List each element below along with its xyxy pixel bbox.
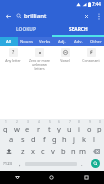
button[interactable]: 8 — [74, 120, 84, 133]
button[interactable]: a — [6, 133, 17, 145]
button[interactable]: 0 — [94, 120, 104, 133]
staticText: LOOKUP — [16, 26, 36, 33]
button[interactable]: Home — [34, 171, 69, 184]
staticText: 5 — [49, 120, 51, 124]
button[interactable]: ?123 — [0, 157, 15, 170]
staticText: 4 — [38, 120, 40, 124]
staticText: o — [87, 124, 92, 133]
staticText: c — [41, 146, 45, 156]
staticText: j — [73, 134, 75, 144]
button[interactable]: Adj. — [53, 37, 70, 46]
staticText: e — [25, 124, 30, 133]
staticText: t — [48, 124, 51, 133]
staticText: Any letter — [5, 58, 21, 63]
staticText: w — [14, 124, 20, 133]
button[interactable]: Verbs — [36, 37, 53, 46]
staticText: 2 — [16, 120, 18, 124]
staticText: Verbs — [39, 39, 51, 45]
button[interactable]: Back — [0, 171, 34, 184]
button[interactable]: Backspace — [88, 145, 104, 157]
staticText: d — [31, 134, 36, 144]
staticText: l — [93, 134, 95, 144]
button[interactable]: j — [69, 133, 79, 145]
staticText: Vowel — [60, 58, 70, 63]
button[interactable]: brilliant — [24, 12, 80, 20]
button[interactable]: Adv. — [70, 37, 87, 46]
button[interactable]: Nouns — [18, 37, 36, 46]
staticText: , — [19, 160, 21, 168]
button[interactable]: ? — [0, 48, 26, 63]
staticText: . — [81, 160, 83, 168]
staticText: f — [43, 134, 46, 144]
button[interactable]: Other — [87, 37, 104, 46]
staticText: x — [31, 146, 35, 156]
button[interactable]: x — [28, 145, 38, 157]
button[interactable]: c — [38, 145, 48, 157]
button[interactable]: Back — [0, 8, 16, 24]
button[interactable]: More options — [93, 11, 104, 22]
staticText: 9 — [89, 120, 91, 124]
button[interactable]: LOOKUP — [0, 24, 52, 35]
button[interactable]: Recent apps — [69, 171, 104, 184]
button[interactable]: f — [39, 133, 49, 145]
staticText: 7 — [69, 120, 71, 124]
staticText: Consonant — [82, 58, 100, 63]
button[interactable]: 3 — [22, 120, 33, 133]
staticText: k — [82, 134, 87, 144]
button[interactable]: l — [89, 133, 99, 145]
button[interactable]: h — [59, 133, 69, 145]
button[interactable]: s — [17, 133, 28, 145]
staticText: 8 — [78, 120, 80, 124]
button[interactable]: 9 — [84, 120, 94, 133]
button[interactable]: m — [78, 145, 88, 157]
button[interactable]: z — [17, 145, 28, 157]
staticText: p — [97, 124, 102, 133]
button[interactable]: 6 — [54, 120, 64, 133]
button[interactable]: 7 — [64, 120, 74, 133]
button[interactable]: Period — [77, 157, 87, 170]
button[interactable]: Space — [25, 161, 77, 166]
staticText: ? — [12, 49, 15, 56]
button[interactable]: 4 — [33, 120, 44, 133]
button[interactable]: b — [58, 145, 68, 157]
staticText: n — [71, 146, 76, 156]
button[interactable]: d — [28, 133, 39, 145]
staticText: 3 — [27, 120, 29, 124]
staticText: 0 — [99, 120, 101, 124]
staticText: r — [37, 124, 41, 133]
button[interactable]: Clear — [80, 10, 93, 23]
button[interactable]: Comma — [15, 157, 25, 170]
staticText: Other — [90, 39, 102, 45]
staticText: All — [6, 39, 12, 45]
button[interactable]: k — [79, 133, 89, 145]
staticText: 7:44 — [92, 1, 101, 7]
staticText: v — [51, 146, 55, 156]
button[interactable]: 1 — [0, 120, 11, 133]
staticText: u — [67, 124, 72, 133]
staticText: h — [62, 134, 67, 144]
staticText: i — [78, 124, 80, 133]
staticText: m — [79, 146, 87, 156]
button[interactable]: 5 — [44, 120, 54, 133]
button[interactable]: Zero or more unknown letters — [26, 48, 52, 71]
button[interactable]: Consonant — [78, 48, 104, 63]
staticText: brilliant — [24, 12, 47, 20]
button[interactable]: g — [49, 133, 59, 145]
button[interactable]: Vowel — [52, 48, 78, 63]
button[interactable]: SEARCH — [52, 24, 104, 35]
button[interactable]: Search — [87, 157, 104, 170]
staticText: Adv. — [74, 39, 83, 45]
staticText: g — [52, 134, 57, 144]
staticText: SEARCH — [69, 26, 88, 33]
staticText: s — [21, 134, 25, 144]
staticText: a — [9, 134, 14, 144]
button[interactable]: v — [48, 145, 58, 157]
button[interactable]: All — [0, 37, 18, 46]
button[interactable]: n — [68, 145, 78, 157]
staticText: b — [61, 146, 66, 156]
button[interactable]: 2 — [11, 120, 22, 133]
button[interactable]: Shift — [0, 145, 17, 157]
staticText: q — [3, 124, 8, 133]
staticText: Zero or more unknown letters — [29, 58, 50, 71]
staticText: 1 — [5, 120, 7, 124]
